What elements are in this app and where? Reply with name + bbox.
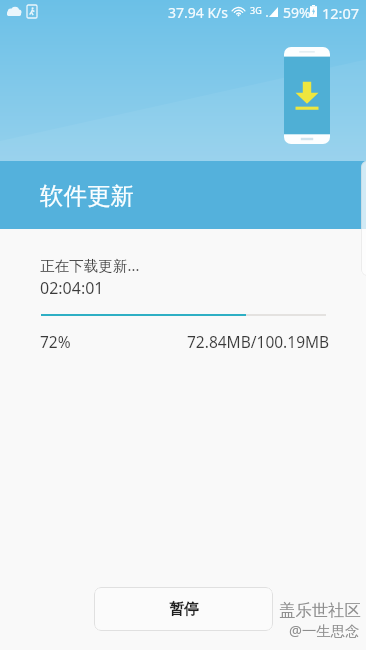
staticText: 盖乐世社区 [279,600,361,621]
staticText: 软件更新 [40,181,134,211]
staticText: 02:04:01 [40,277,104,299]
staticText: 72% [40,331,71,352]
staticText: 37.94 K/s [168,3,229,22]
staticText: 3G [250,4,262,16]
staticText: @一生思念 [289,621,360,641]
staticText: 12:07 [322,3,360,23]
staticText: 暂停 [169,600,199,619]
staticText: 72.84MB/100.19MB [187,331,330,352]
staticText: 正在下载更新... [40,255,140,275]
staticText: 59% [283,3,311,22]
button[interactable]: 暂停 [94,587,273,631]
